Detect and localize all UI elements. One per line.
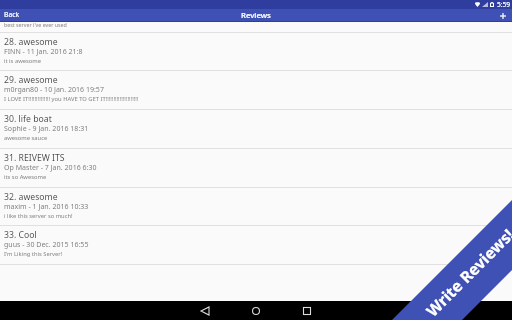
button[interactable]: 33. Cool (0, 226, 512, 264)
staticText: FINN - 11 Jan. 2016 21:8 (4, 46, 83, 56)
staticText: Reviews (241, 10, 271, 21)
button[interactable]: Back (195, 301, 215, 320)
button[interactable]: Home (246, 301, 266, 320)
button[interactable]: Recent apps (297, 301, 317, 320)
staticText: 32. awesome (4, 191, 58, 203)
staticText: 30. life boat (4, 113, 52, 125)
button[interactable]: 32. awesome (0, 188, 512, 225)
staticText: I'm Liking this Server! (4, 250, 63, 258)
staticText: maxim - 1 Jan. 2016 10:33 (4, 201, 89, 211)
button[interactable]: best server i've ever used (0, 22, 512, 32)
button[interactable]: 31. REIVEW ITS (0, 149, 512, 187)
staticText: I LOVE IT!!!!!!!!!!!!!! you HAVE TO GET … (4, 95, 139, 103)
staticText: i like this server so much! (4, 212, 73, 220)
staticText: Back (4, 10, 20, 19)
staticText: 28. awesome (4, 36, 58, 48)
staticText: Op Master - 7 Jan. 2016 6:30 (4, 162, 97, 172)
button[interactable]: 29. awesome (0, 71, 512, 109)
staticText: guus - 30 Dec. 2015 16:55 (4, 239, 89, 249)
staticText: 31. REIVEW ITS (4, 152, 65, 164)
button[interactable]: 30. life boat (0, 110, 512, 148)
staticText: m0rgan80 - 10 Jan. 2016 19:57 (4, 84, 104, 94)
staticText: 29. awesome (4, 74, 58, 86)
staticText: awesome sauce (4, 134, 48, 142)
button[interactable]: 28. awesome (0, 33, 512, 70)
staticText: it is awesome (4, 57, 41, 65)
staticText: its so Awesome (4, 173, 47, 181)
button[interactable]: Back (0, 9, 26, 20)
button[interactable]: Add review (497, 10, 509, 22)
staticText: 5:59 (497, 0, 511, 9)
staticText: best server i've ever used (4, 21, 67, 28)
staticText: Sophie - 9 Jan. 2016 18:31 (4, 123, 89, 133)
staticText: 33. Cool (4, 229, 37, 241)
